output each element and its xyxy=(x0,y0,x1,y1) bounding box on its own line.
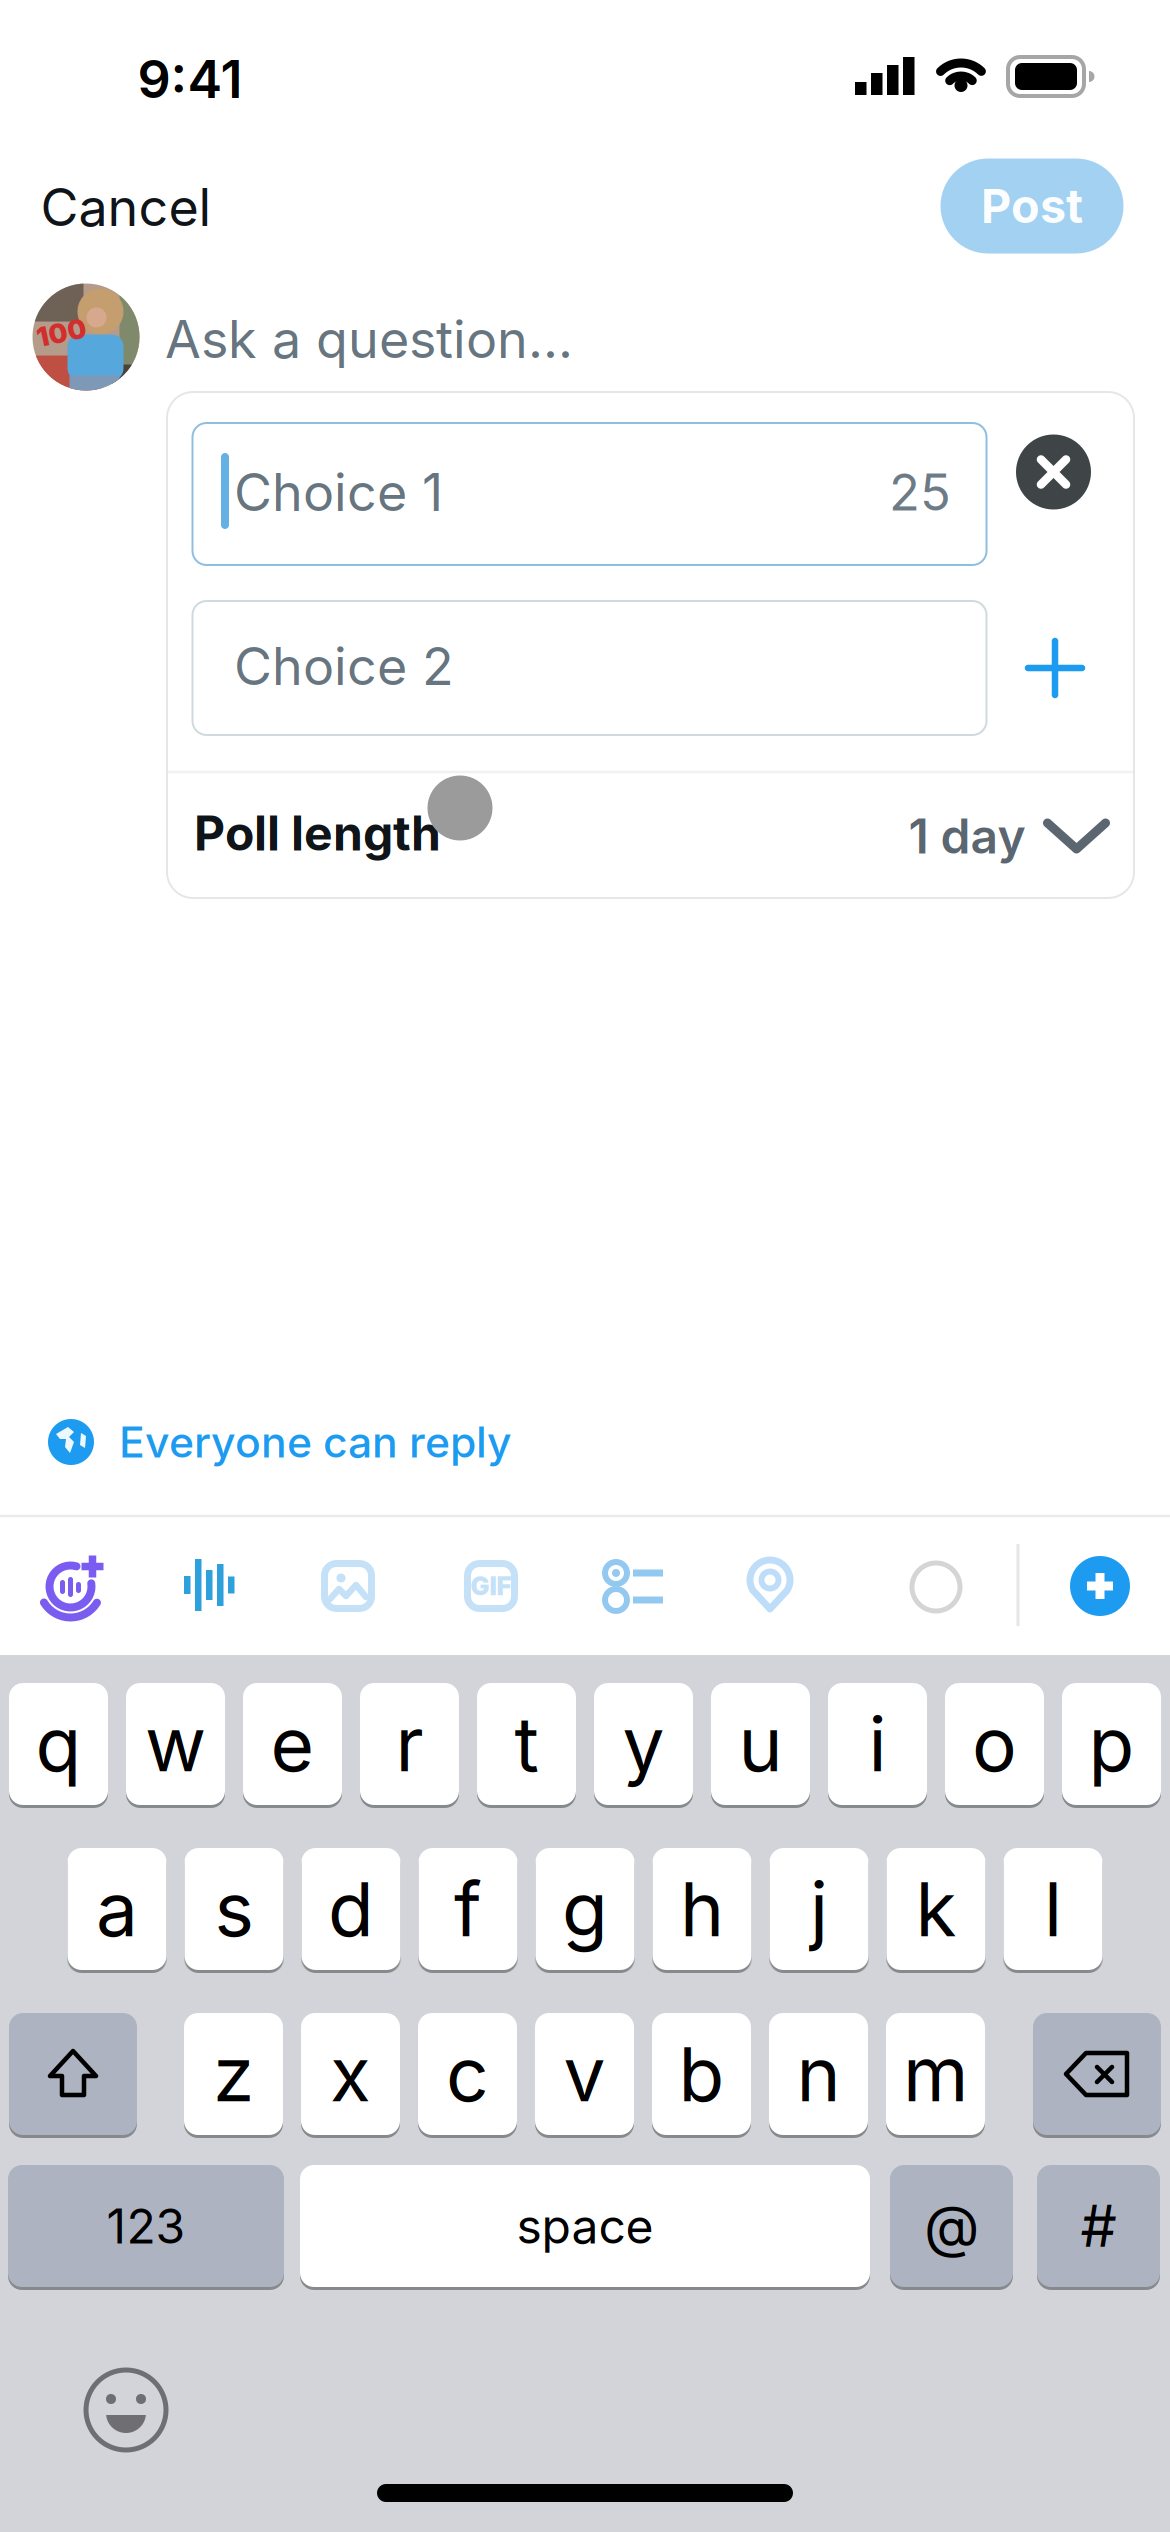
button[interactable]: d xyxy=(301,1848,400,1970)
button[interactable]: c xyxy=(418,2013,517,2135)
button[interactable]: m xyxy=(886,2013,985,2135)
staticText: p xyxy=(1088,1700,1134,1788)
button[interactable]: Poll xyxy=(603,1560,665,1612)
button[interactable]: w xyxy=(126,1683,225,1805)
staticText: j xyxy=(810,1865,828,1953)
button[interactable]: Add post xyxy=(1070,1556,1130,1616)
staticText: v xyxy=(563,2030,605,2118)
button[interactable]: j xyxy=(769,1848,868,1970)
button[interactable]: Add a choice xyxy=(1023,636,1087,700)
staticText: 25 xyxy=(889,462,951,522)
staticText: t xyxy=(514,1700,538,1788)
staticText: k xyxy=(915,1865,956,1953)
staticText: i xyxy=(868,1700,886,1788)
button[interactable]: Remove poll xyxy=(1016,434,1091,509)
button[interactable]: Poll length: 1 day xyxy=(908,808,1109,864)
staticText: space xyxy=(516,2198,653,2254)
button[interactable]: i xyxy=(828,1683,927,1805)
staticText: Cancel xyxy=(40,176,211,238)
staticText: # xyxy=(1080,2192,1116,2260)
button[interactable]: Remix xyxy=(40,1551,107,1618)
button[interactable]: b xyxy=(652,2013,751,2135)
button[interactable]: u xyxy=(711,1683,810,1805)
button[interactable]: Cancel xyxy=(40,176,211,238)
staticText: d xyxy=(328,1865,374,1953)
staticText: GIF xyxy=(470,1571,511,1601)
staticText: b xyxy=(678,2030,724,2118)
staticText: l xyxy=(1044,1865,1062,1953)
button[interactable]: o xyxy=(945,1683,1044,1805)
staticText: Choice 1 xyxy=(234,461,443,523)
staticText: o xyxy=(972,1700,1017,1788)
staticText: z xyxy=(213,2030,254,2118)
button[interactable]: Photos xyxy=(321,1560,375,1612)
button[interactable]: l xyxy=(1003,1848,1102,1970)
button[interactable]: Shift xyxy=(9,2013,137,2135)
button[interactable]: q xyxy=(9,1683,108,1805)
button[interactable]: @ xyxy=(890,2165,1013,2287)
button[interactable]: f xyxy=(418,1848,517,1970)
staticText: h xyxy=(680,1865,724,1953)
staticText: w xyxy=(145,1700,206,1788)
staticText: Everyone can reply xyxy=(119,1417,512,1467)
staticText: n xyxy=(796,2030,840,2118)
button[interactable]: x xyxy=(301,2013,400,2135)
button[interactable]: s xyxy=(184,1848,283,1970)
button[interactable]: h xyxy=(652,1848,751,1970)
staticText: s xyxy=(214,1865,253,1953)
staticText: 1 day xyxy=(908,808,1025,864)
button[interactable]: # xyxy=(1037,2165,1160,2287)
button[interactable]: z xyxy=(184,2013,283,2135)
button[interactable]: e xyxy=(243,1683,342,1805)
staticText: 123 xyxy=(106,2198,185,2254)
staticText: 9:41 xyxy=(137,48,242,110)
button[interactable]: GIF xyxy=(464,1560,518,1612)
button[interactable]: n xyxy=(769,2013,868,2135)
staticText: f xyxy=(454,1865,482,1953)
staticText: 100 xyxy=(36,317,86,348)
staticText: Poll length xyxy=(194,805,441,861)
button[interactable]: v xyxy=(535,2013,634,2135)
button[interactable]: Everyone can reply xyxy=(48,1417,512,1467)
staticText: u xyxy=(738,1700,782,1788)
button[interactable]: Voice xyxy=(182,1557,236,1613)
button[interactable]: Emoji xyxy=(84,2368,168,2452)
staticText: q xyxy=(35,1700,81,1788)
staticText: m xyxy=(903,2030,968,2118)
button[interactable]: t xyxy=(477,1683,576,1805)
staticText: y xyxy=(622,1700,664,1788)
staticText: e xyxy=(270,1700,314,1788)
button[interactable]: a xyxy=(67,1848,166,1970)
staticText: @ xyxy=(924,2192,979,2260)
staticText: Post xyxy=(981,178,1083,234)
button[interactable]: k xyxy=(886,1848,985,1970)
staticText: a xyxy=(96,1865,138,1953)
staticText: r xyxy=(395,1700,423,1788)
button[interactable]: g xyxy=(535,1848,634,1970)
staticText: x xyxy=(330,2030,371,2118)
button[interactable]: r xyxy=(360,1683,459,1805)
button[interactable]: space xyxy=(300,2165,870,2287)
button[interactable]: p xyxy=(1062,1683,1161,1805)
staticText: Ask a question... xyxy=(165,308,573,370)
button[interactable]: Post xyxy=(940,158,1123,253)
button[interactable]: 123 xyxy=(8,2165,284,2287)
staticText: c xyxy=(446,2030,489,2118)
staticText: Choice 2 xyxy=(234,635,454,697)
button[interactable]: y xyxy=(594,1683,693,1805)
button[interactable]: Delete xyxy=(1033,2013,1161,2135)
button[interactable]: Tag location xyxy=(743,1557,797,1613)
staticText: g xyxy=(562,1865,608,1953)
